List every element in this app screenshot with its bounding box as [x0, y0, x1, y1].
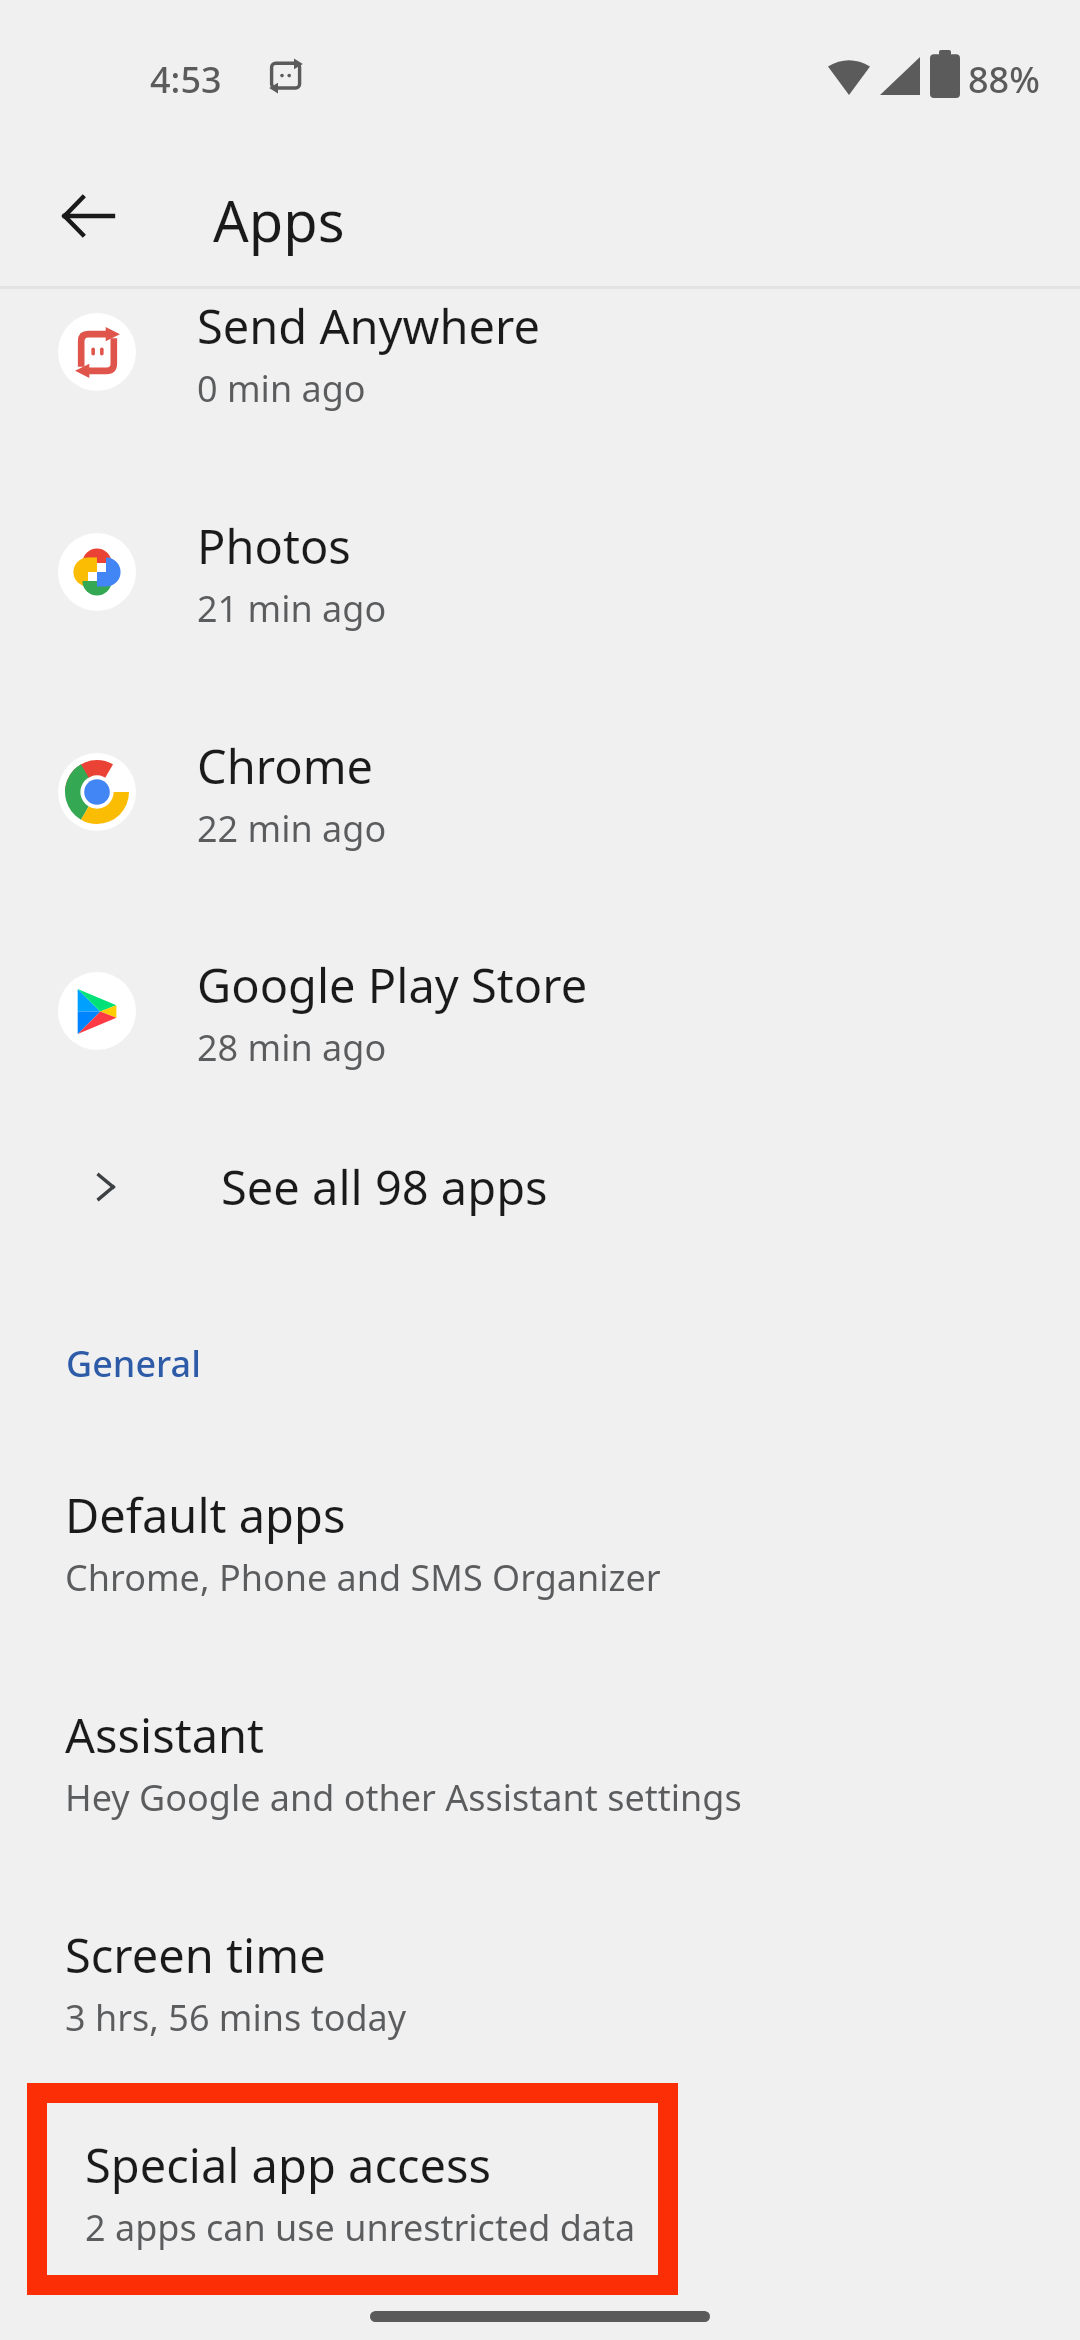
button[interactable]: See all 98 apps — [0, 1122, 1080, 1252]
button[interactable]: Default apps — [0, 1453, 1080, 1665]
staticText: Google Play Store — [197, 953, 588, 1017]
staticText: Chrome, Phone and SMS Organizer — [65, 1553, 661, 1602]
button[interactable]: Google Play Store — [0, 930, 1080, 1150]
staticText: 3 hrs, 56 mins today — [65, 1993, 407, 2042]
staticText: Assistant — [65, 1703, 265, 1767]
staticText: Photos — [197, 514, 351, 578]
staticText: Screen time — [65, 1923, 326, 1987]
staticText: Default apps — [65, 1483, 346, 1547]
staticText: 2 apps can use unrestricted data — [85, 2203, 636, 2252]
staticText: 21 min ago — [197, 584, 387, 633]
button[interactable]: Assistant — [0, 1673, 1080, 1885]
staticText: Apps — [213, 182, 345, 258]
staticText: 22 min ago — [197, 804, 387, 853]
staticText: 0 min ago — [197, 364, 366, 413]
staticText: Hey Google and other Assistant settings — [65, 1773, 742, 1822]
staticText: Chrome — [197, 734, 374, 798]
staticText: Send Anywhere — [197, 294, 541, 358]
button[interactable]: Special app access — [27, 2083, 678, 2295]
staticText: 88% — [968, 55, 1040, 104]
button[interactable]: Send Anywhere — [0, 271, 1080, 491]
staticText: 4:53 — [150, 55, 222, 104]
staticText: General — [66, 1339, 201, 1388]
button[interactable]: Photos — [0, 491, 1080, 711]
button[interactable]: Back — [40, 168, 136, 264]
button[interactable]: Chrome — [0, 711, 1080, 931]
button[interactable]: Screen time — [0, 1893, 1080, 2105]
staticText: 28 min ago — [197, 1023, 387, 1072]
staticText: See all 98 apps — [221, 1155, 548, 1219]
staticText: Special app access — [85, 2133, 492, 2197]
